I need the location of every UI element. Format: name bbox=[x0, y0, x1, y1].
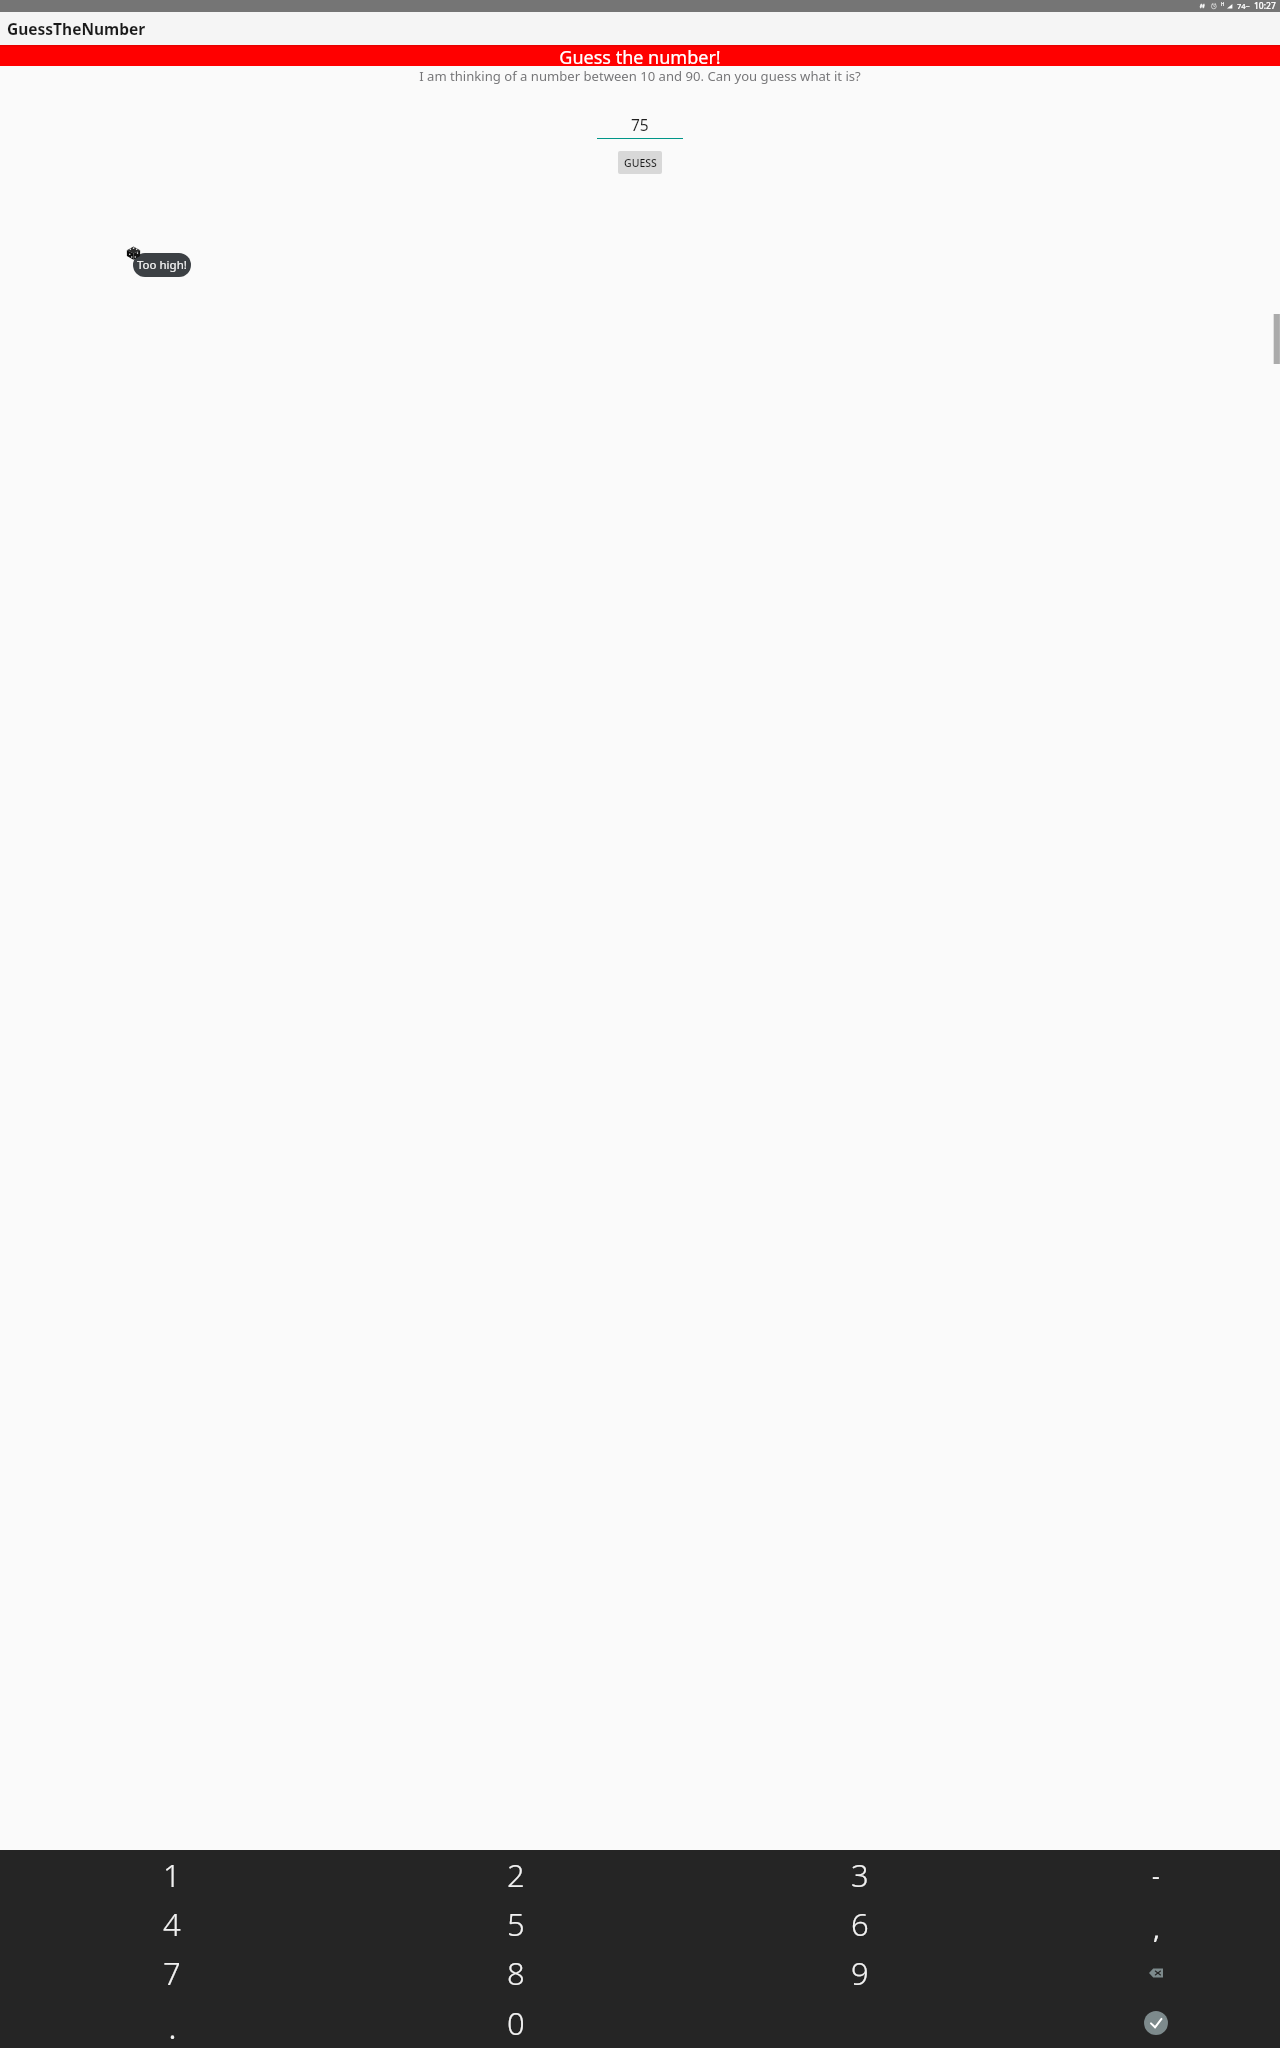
staticText: , bbox=[1153, 1911, 1160, 1946]
button[interactable]: 7 bbox=[0, 1948, 344, 1998]
staticText: . bbox=[169, 2011, 176, 2046]
staticText: 3 bbox=[851, 1854, 869, 1896]
staticText: 9 bbox=[851, 1952, 869, 1994]
button[interactable]: GUESS bbox=[618, 151, 662, 174]
staticText: 0 bbox=[507, 2002, 525, 2044]
staticText: 75 bbox=[631, 114, 649, 135]
staticText: 8 bbox=[507, 1952, 525, 1994]
button[interactable]: Backspace bbox=[1032, 1948, 1280, 1998]
button[interactable]: , bbox=[1032, 1899, 1280, 1948]
staticText: H bbox=[1221, 1, 1225, 7]
button[interactable]: 75 bbox=[597, 114, 683, 139]
button[interactable]: 1 bbox=[0, 1850, 344, 1899]
staticText: 2 bbox=[507, 1854, 525, 1896]
button[interactable]: 6 bbox=[688, 1899, 1032, 1948]
button[interactable]: 2 bbox=[344, 1850, 688, 1899]
staticText: Too high! bbox=[137, 257, 187, 273]
staticText: 5 bbox=[507, 1903, 525, 1945]
button[interactable]: Enter bbox=[1032, 1998, 1280, 2048]
staticText: GuessTheNumber bbox=[7, 18, 146, 39]
button[interactable]: 4 bbox=[0, 1899, 344, 1948]
button[interactable]: . bbox=[0, 1998, 344, 2048]
button[interactable]: 0 bbox=[344, 1998, 688, 2048]
staticText: Guess the number! bbox=[559, 45, 721, 66]
staticText: 4 bbox=[163, 1903, 181, 1945]
staticText: GUESS bbox=[624, 156, 657, 170]
staticText: 6 bbox=[851, 1903, 869, 1945]
staticText: I am thinking of a number between 10 and… bbox=[419, 67, 861, 85]
button[interactable]: - bbox=[1032, 1850, 1280, 1899]
staticText: 10:27 bbox=[1254, 0, 1276, 12]
button[interactable]: 8 bbox=[344, 1948, 688, 1998]
button[interactable]: 5 bbox=[344, 1899, 688, 1948]
staticText: 74~ bbox=[1237, 1, 1250, 11]
staticText: 7 bbox=[163, 1952, 181, 1994]
staticText: 1 bbox=[163, 1854, 181, 1896]
button[interactable]: 9 bbox=[688, 1948, 1032, 1998]
button[interactable]: 3 bbox=[688, 1850, 1032, 1899]
staticText: - bbox=[1152, 1858, 1160, 1891]
